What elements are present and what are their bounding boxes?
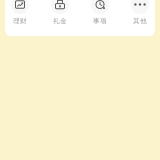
button[interactable]: 事项 [80,0,120,25]
staticText: 其他 [133,17,147,25]
staticText: 理财 [13,17,27,25]
button[interactable]: 理财 [0,0,40,25]
button[interactable]: 其他 [120,0,160,25]
button[interactable]: 礼金 [40,0,80,25]
staticText: 事项 [93,17,107,25]
staticText: 礼金 [53,17,67,25]
